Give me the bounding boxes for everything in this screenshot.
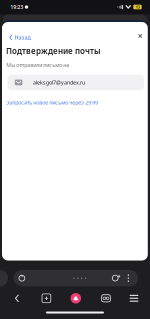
button[interactable]: Alice assistant [63,287,89,309]
staticText: aleksgol7@yandex.ru [33,79,85,86]
button[interactable]: Tabs [93,287,119,309]
staticText: 13 [135,4,139,10]
button[interactable]: Address bar [14,270,138,286]
button[interactable]: Close [133,29,147,43]
button[interactable]: Menu [121,287,147,309]
button[interactable]: Back [4,287,30,309]
button[interactable]: New tab [33,287,59,309]
staticText: 19:23 [10,3,23,11]
staticText: Назад [15,34,31,41]
staticText: Мы отправили письмо на [6,61,69,68]
button[interactable]: Назад [4,30,36,45]
staticText: Подтверждение почты [6,46,101,56]
staticText: Запросить новое письмо через 29:49 [6,99,98,106]
button[interactable]: Запросить новое письмо через 29:49 [2,95,102,109]
